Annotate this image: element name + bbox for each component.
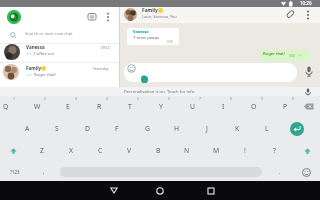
button[interactable] — [286, 9, 296, 21]
staticText: L — [265, 124, 269, 133]
staticText: A — [25, 124, 30, 133]
button[interactable]: Y — [147, 96, 175, 117]
button[interactable]: H — [163, 118, 191, 139]
staticText: 3 — [75, 96, 77, 101]
staticText: H — [174, 124, 180, 133]
button[interactable] — [303, 65, 315, 79]
button[interactable] — [104, 181, 124, 200]
staticText: Z — [40, 146, 44, 155]
button[interactable]: S — [43, 118, 71, 139]
staticText: ! — [244, 146, 246, 155]
button[interactable]: P — [271, 96, 299, 117]
staticText: 09:12 — [101, 45, 110, 50]
button[interactable]: E — [54, 96, 82, 117]
staticText: . — [279, 168, 281, 175]
button[interactable] — [150, 181, 170, 200]
staticText: M — [213, 146, 220, 155]
staticText: C — [98, 146, 103, 155]
button[interactable]: I — [209, 96, 237, 117]
button[interactable]: F — [103, 118, 131, 139]
staticText: 7:04 — [289, 54, 295, 58]
button[interactable] — [298, 96, 320, 117]
staticText: ✓✓ — [26, 52, 33, 56]
button[interactable] — [298, 164, 314, 180]
staticText: 6 — [168, 96, 170, 101]
button[interactable]: ? — [260, 140, 288, 161]
button[interactable]: G — [133, 118, 161, 139]
staticText: 4 — [106, 96, 108, 101]
staticText: ✓✓ — [26, 73, 33, 77]
button[interactable] — [124, 63, 297, 82]
staticText: Family — [26, 65, 42, 71]
staticText: W — [34, 102, 41, 111]
button[interactable]: V — [115, 140, 143, 161]
button[interactable]: M — [202, 140, 230, 161]
button[interactable]: ! — [231, 140, 259, 161]
staticText: 2 — [44, 96, 46, 101]
button[interactable]: Z — [28, 140, 56, 161]
staticText: Vanessa — [133, 29, 149, 34]
staticText: R — [97, 102, 102, 111]
staticText: O — [251, 102, 257, 111]
button[interactable]: N — [173, 140, 201, 161]
staticText: , — [43, 168, 45, 175]
button[interactable] — [2, 140, 24, 161]
staticText: Y — [159, 102, 163, 111]
staticText: Q — [3, 102, 9, 111]
button[interactable] — [103, 11, 113, 24]
staticText: J — [206, 124, 208, 133]
staticText: Family — [142, 7, 158, 14]
staticText: T — [128, 102, 132, 111]
staticText: U — [190, 102, 195, 111]
staticText: 8 — [230, 96, 232, 101]
staticText: 7:45 — [167, 40, 173, 44]
staticText: 5 — [137, 96, 139, 101]
staticText: P — [283, 102, 288, 111]
staticText: X — [69, 146, 73, 155]
button[interactable]: Family — [0, 63, 119, 87]
staticText: Personalisation is on. Touch for info. — [124, 89, 196, 95]
staticText: Coffee uni — [34, 51, 55, 57]
staticText: Search or start new chat — [25, 31, 73, 37]
staticText: V — [127, 146, 132, 155]
button[interactable]: T — [116, 96, 144, 117]
button[interactable] — [7, 10, 21, 24]
staticText: 9 — [261, 96, 263, 101]
button[interactable]: C — [86, 140, 114, 161]
staticText: E — [66, 102, 70, 111]
button[interactable] — [296, 140, 318, 161]
staticText: ? — [273, 146, 276, 155]
button[interactable]: ?123 — [2, 162, 28, 181]
button[interactable] — [290, 122, 304, 136]
staticText: Vanessa — [26, 44, 45, 50]
staticText: 1 — [13, 96, 15, 101]
button[interactable]: W — [23, 96, 51, 117]
button[interactable]: U — [178, 96, 206, 117]
staticText: Roger that! — [34, 72, 56, 78]
button[interactable]: K — [223, 118, 251, 139]
button[interactable] — [201, 181, 221, 200]
staticText: S — [55, 124, 59, 133]
button[interactable]: Q — [0, 96, 20, 117]
button[interactable]: A — [13, 118, 41, 139]
button[interactable] — [303, 9, 313, 22]
button[interactable]: X — [57, 140, 85, 161]
button[interactable]: Vanessa — [0, 43, 119, 62]
button[interactable]: L — [253, 118, 281, 139]
button[interactable]: R — [85, 96, 113, 117]
button[interactable] — [87, 12, 98, 23]
button[interactable]: . — [272, 162, 288, 181]
button[interactable]: O — [240, 96, 268, 117]
staticText: ?123 — [10, 169, 20, 175]
button[interactable]: Personalisation is on. Touch for info. — [0, 87, 320, 96]
button[interactable]: D — [73, 118, 101, 139]
button[interactable]: J — [193, 118, 221, 139]
staticText: N — [184, 146, 190, 155]
staticText: ✓✓ — [298, 53, 303, 56]
button[interactable]: B — [144, 140, 172, 161]
staticText: 10:26 — [300, 0, 312, 6]
button[interactable]: , — [36, 162, 52, 181]
staticText: G — [145, 124, 150, 133]
button[interactable]: Search or start new chat — [0, 28, 119, 43]
